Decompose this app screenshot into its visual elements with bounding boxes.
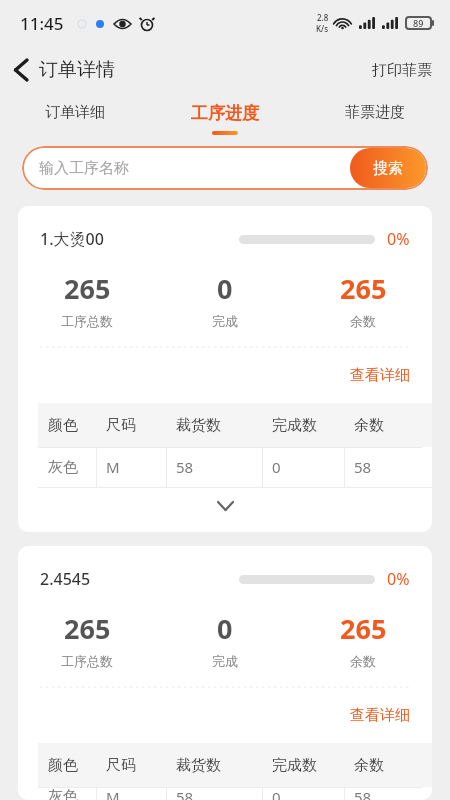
button[interactable]: 工序进度 [150, 94, 300, 146]
button[interactable]: 1.大烫00 [18, 206, 432, 532]
staticText: 完成 [212, 653, 238, 669]
staticText: 58 [354, 787, 372, 800]
staticText: 输入工序名称 [39, 159, 129, 178]
staticText: 11:45 [20, 12, 64, 35]
staticText: 0 [217, 610, 233, 647]
staticText: 订单详细 [45, 103, 105, 122]
staticText: 2.8 [317, 12, 329, 23]
button[interactable]: 2.4545 [18, 546, 432, 800]
staticText: 尺码 [106, 416, 136, 435]
staticText: 58 [354, 457, 372, 477]
staticText: 打印菲票 [372, 61, 432, 80]
staticText: 余数 [350, 313, 376, 329]
staticText: 58 [176, 457, 194, 477]
button[interactable]: 菲票进度 [300, 94, 450, 146]
button[interactable]: 打印菲票 [354, 55, 450, 86]
staticText: 265 [340, 610, 387, 647]
button[interactable]: Back [0, 54, 123, 86]
staticText: 265 [64, 270, 111, 307]
staticText: 0 [272, 457, 281, 477]
staticText: 颜色 [48, 416, 78, 435]
staticText: 灰色 [48, 787, 78, 800]
staticText: 0 [217, 270, 233, 307]
staticText: K/s [316, 23, 329, 34]
staticText: 查看详细 [350, 706, 410, 725]
staticText: 完成数 [272, 416, 317, 435]
staticText: 工序总数 [61, 653, 113, 669]
staticText: 0 [272, 787, 281, 800]
button[interactable]: 搜索 [350, 148, 426, 188]
staticText: 尺码 [106, 756, 136, 775]
staticText: 265 [340, 270, 387, 307]
button[interactable]: 查看详细 [328, 702, 432, 729]
staticText: 查看详细 [350, 366, 410, 385]
staticText: 0% [387, 568, 410, 590]
staticText: 完成数 [272, 756, 317, 775]
staticText: 89 [413, 17, 424, 29]
staticText: 余数 [354, 756, 384, 775]
staticText: 完成 [212, 313, 238, 329]
staticText: M [106, 457, 120, 477]
staticText: 菲票进度 [345, 103, 405, 122]
staticText: 2.4545 [40, 568, 91, 590]
button[interactable]: 订单详细 [0, 94, 150, 146]
button[interactable]: Expand [210, 494, 241, 518]
staticText: 余数 [354, 416, 384, 435]
staticText: 裁货数 [176, 416, 221, 435]
staticText: 58 [176, 787, 194, 800]
other: Back [14, 59, 27, 81]
staticText: 余数 [350, 653, 376, 669]
staticText: 工序进度 [191, 103, 259, 124]
staticText: 搜索 [373, 159, 403, 178]
staticText: 颜色 [48, 756, 78, 775]
staticText: 265 [64, 610, 111, 647]
staticText: 裁货数 [176, 756, 221, 775]
staticText: 1.大烫00 [40, 228, 104, 250]
staticText: 0% [387, 228, 410, 250]
staticText: 灰色 [48, 458, 78, 477]
staticText: 工序总数 [61, 313, 113, 329]
staticText: 订单详情 [39, 58, 115, 82]
staticText: M [106, 787, 120, 800]
button[interactable]: 查看详细 [328, 362, 432, 389]
